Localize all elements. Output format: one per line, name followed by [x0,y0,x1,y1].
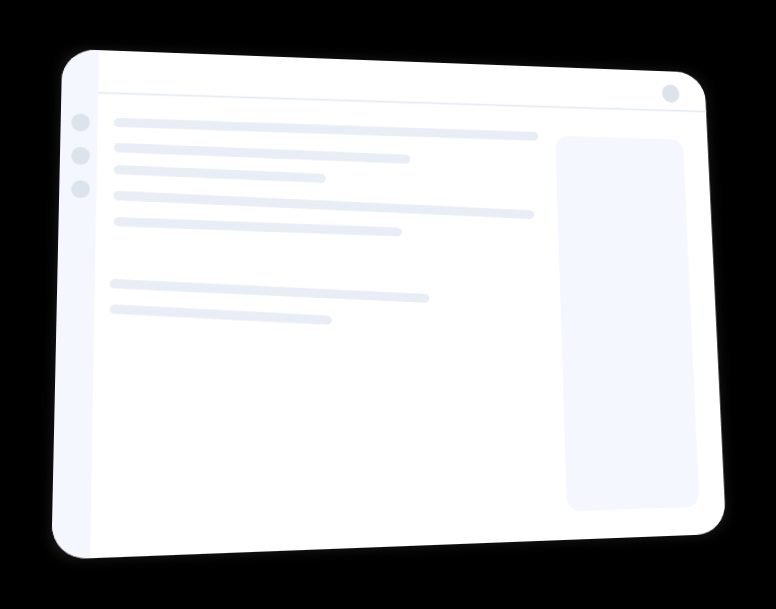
button[interactable]: Settings [71,180,90,198]
button[interactable]: Side panel [555,136,699,511]
button[interactable]: Search [71,146,89,164]
button[interactable]: Home [71,113,90,131]
button[interactable]: Account [662,85,680,103]
